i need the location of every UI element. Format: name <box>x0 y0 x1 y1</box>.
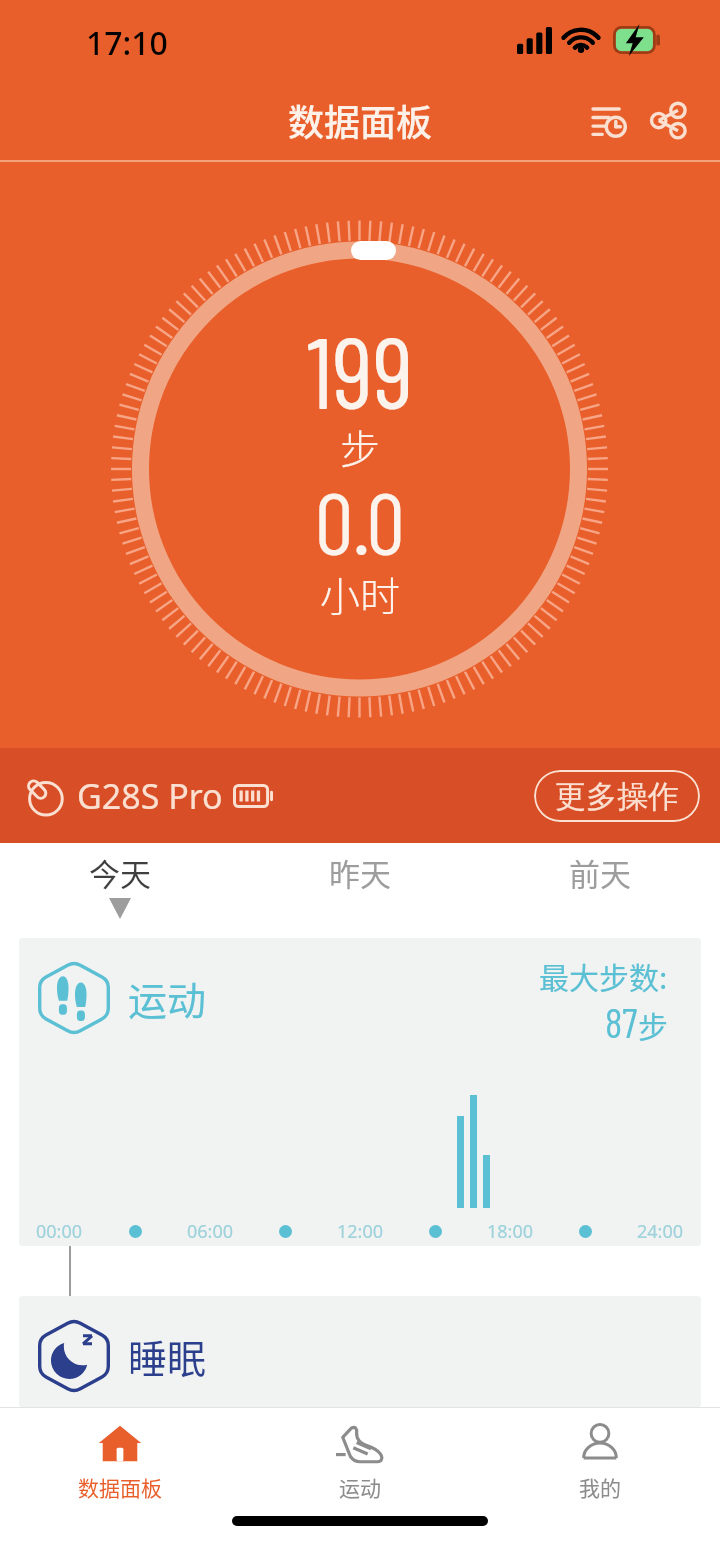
staticText: 今天 <box>89 850 151 895</box>
staticText: 我的 <box>579 1472 621 1502</box>
button[interactable]: 我的 <box>480 1408 720 1502</box>
button[interactable]: 运动 <box>240 1408 480 1502</box>
button[interactable]: 前天 <box>480 843 720 895</box>
button[interactable]: 今天 <box>0 843 240 919</box>
staticText: 步 <box>638 1003 668 1046</box>
staticText: 17:10 <box>86 21 168 65</box>
staticText: 更多操作 <box>555 777 679 816</box>
staticText: 小时 <box>320 565 400 623</box>
staticText: 87 <box>605 997 638 1046</box>
staticText: 数据面板 <box>78 1472 162 1502</box>
staticText: 最大步数: <box>539 954 668 997</box>
button[interactable]: 昨天 <box>240 843 480 895</box>
button[interactable]: 睡眠 <box>19 1296 701 1407</box>
staticText: 昨天 <box>329 850 391 895</box>
staticText: 06:00 <box>187 1219 234 1244</box>
staticText: 24:00 <box>637 1219 684 1244</box>
staticText: 睡眠 <box>128 1328 207 1384</box>
staticText: 前天 <box>569 850 631 895</box>
staticText: 00:00 <box>36 1219 83 1244</box>
staticText: 199 <box>307 309 414 429</box>
button[interactable]: 数据面板 <box>0 1408 240 1502</box>
button[interactable]: History <box>581 92 637 148</box>
staticText: 运动 <box>128 970 207 1026</box>
button[interactable]: 运动 <box>19 938 701 1246</box>
staticText: 运动 <box>339 1472 381 1502</box>
staticText: 步 <box>340 418 380 476</box>
staticText: 数据面板 <box>288 94 433 146</box>
button[interactable]: Share <box>640 92 696 148</box>
staticText: G28S Pro <box>77 773 223 819</box>
staticText: 12:00 <box>337 1219 384 1244</box>
staticText: 18:00 <box>487 1219 534 1244</box>
button[interactable]: 更多操作 <box>534 770 700 822</box>
staticText: 0.0 <box>315 469 405 572</box>
